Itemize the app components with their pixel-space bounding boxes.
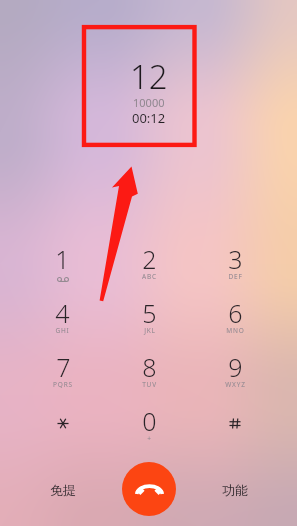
button[interactable]: 8 [106, 350, 192, 404]
button[interactable]: End call [122, 462, 176, 516]
button[interactable]: 2 [106, 242, 192, 296]
staticText: 3 [228, 242, 243, 276]
staticText: 12 [130, 54, 168, 99]
staticText: 功能 [222, 482, 248, 498]
staticText: 免提 [50, 482, 76, 498]
staticText: 5 [142, 296, 157, 330]
staticText: WXYZ [225, 380, 246, 389]
staticText: 10000 [133, 95, 165, 110]
button[interactable]: 免提 [19, 449, 106, 526]
staticText: JKL [144, 326, 156, 335]
button[interactable] [19, 404, 106, 458]
button[interactable]: 5 [106, 296, 192, 350]
button[interactable] [192, 404, 278, 458]
staticText: MNO [226, 326, 245, 335]
button[interactable]: 3 [192, 242, 278, 296]
button[interactable]: 1 [19, 242, 106, 296]
button[interactable]: 功能 [192, 449, 278, 526]
staticText: TUV [142, 380, 157, 389]
staticText: 0 [142, 404, 157, 438]
staticText: GHI [55, 326, 70, 335]
button[interactable]: 0 [106, 404, 192, 458]
staticText: ABC [142, 272, 157, 281]
button[interactable]: 4 [19, 296, 106, 350]
staticText: 2 [142, 242, 157, 276]
button[interactable]: 7 [19, 350, 106, 404]
staticText: 1 [55, 242, 70, 276]
staticText: 7 [56, 350, 71, 384]
staticText: DEF [228, 272, 243, 281]
staticText: 8 [142, 350, 157, 384]
staticText: PQRS [53, 380, 73, 389]
staticText: 4 [55, 296, 70, 330]
staticText: 00:12 [132, 109, 166, 127]
staticText: 6 [228, 296, 243, 330]
button[interactable]: 9 [192, 350, 278, 404]
staticText: + [147, 434, 152, 443]
staticText: 9 [228, 350, 243, 384]
button[interactable]: 6 [192, 296, 278, 350]
